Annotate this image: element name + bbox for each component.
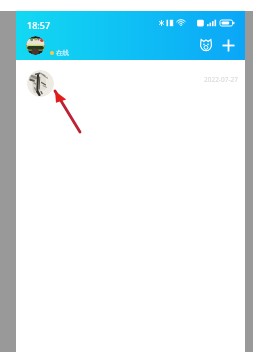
staticText: 在线 bbox=[56, 49, 69, 57]
staticText: 18:57 bbox=[27, 19, 51, 31]
button[interactable]: Profile bbox=[26, 36, 45, 55]
button[interactable]: Avatar bbox=[27, 70, 54, 97]
staticText: 2022-07-27 bbox=[204, 75, 238, 84]
button[interactable]: Add bbox=[219, 36, 237, 54]
button[interactable]: Mascot bbox=[197, 36, 215, 54]
button[interactable]: Profile bbox=[26, 36, 45, 55]
